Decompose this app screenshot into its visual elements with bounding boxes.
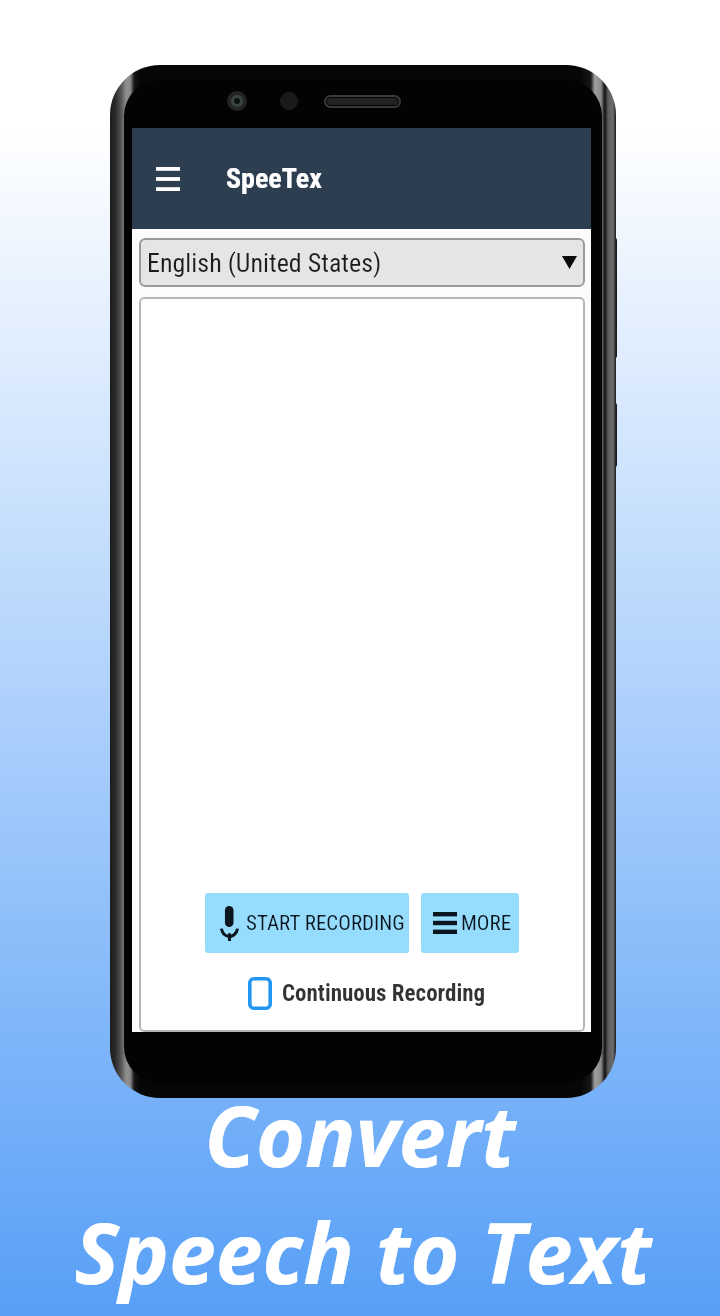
button[interactable]: English (United States) <box>139 238 585 287</box>
button[interactable]: Continuous Recording <box>248 977 486 1010</box>
staticText: Speech to Text <box>3 1194 720 1308</box>
button[interactable]: MORE <box>421 893 519 953</box>
staticText: START RECORDING <box>246 911 405 936</box>
staticText: SpeeTex <box>226 162 322 195</box>
staticText: Continuous Recording <box>282 980 486 1007</box>
staticText: Convert <box>0 1077 720 1191</box>
staticText: MORE <box>461 911 512 936</box>
staticText: English (United States) <box>147 248 382 278</box>
button[interactable]: Open navigation menu <box>144 155 192 203</box>
button[interactable]: START RECORDING <box>205 893 409 953</box>
